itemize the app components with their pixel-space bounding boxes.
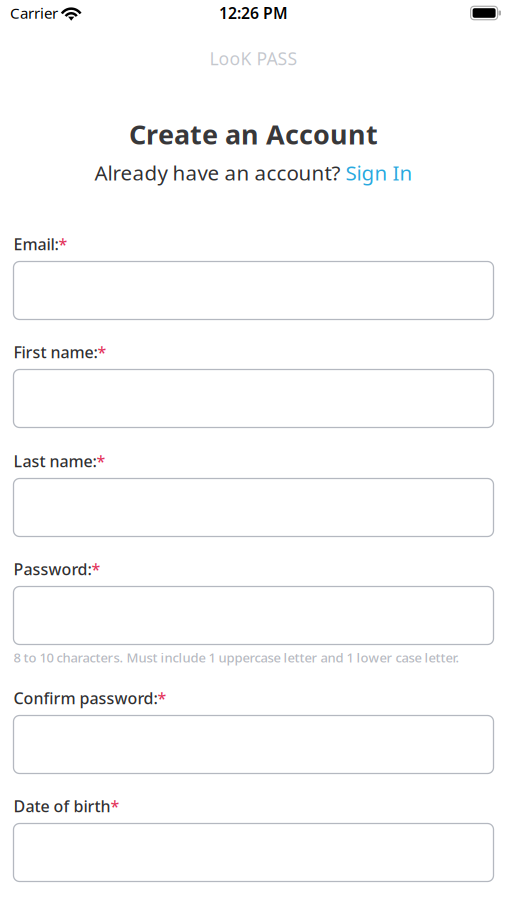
button[interactable]: Password bbox=[13, 586, 493, 644]
staticText: Already have an account? bbox=[94, 158, 345, 186]
staticText: * bbox=[157, 687, 166, 709]
staticText: * bbox=[91, 558, 100, 580]
staticText: * bbox=[58, 233, 67, 255]
button[interactable]: Sign In bbox=[345, 158, 412, 186]
staticText: Last name: bbox=[13, 450, 96, 472]
staticText: LooK PASS bbox=[209, 46, 297, 70]
staticText: Password: bbox=[13, 558, 91, 580]
staticText: 8 to 10 characters. Must include 1 upper… bbox=[13, 649, 459, 666]
button[interactable]: First name bbox=[13, 369, 493, 427]
button[interactable]: Confirm password bbox=[13, 715, 493, 773]
staticText: First name: bbox=[13, 341, 97, 363]
staticText: Create an Account bbox=[129, 116, 378, 152]
staticText: * bbox=[97, 341, 106, 363]
staticText: Date of birth bbox=[13, 795, 110, 817]
staticText: Carrier bbox=[10, 3, 58, 23]
button[interactable]: Date of birth bbox=[13, 823, 493, 881]
staticText: Email: bbox=[13, 233, 58, 255]
staticText: Sign In bbox=[345, 158, 412, 186]
staticText: Confirm password: bbox=[13, 687, 157, 709]
staticText: * bbox=[96, 450, 105, 472]
staticText: * bbox=[110, 795, 119, 817]
button[interactable]: Last name bbox=[13, 478, 493, 536]
staticText: 12:26 PM bbox=[219, 2, 288, 24]
button[interactable]: Email bbox=[13, 261, 493, 319]
